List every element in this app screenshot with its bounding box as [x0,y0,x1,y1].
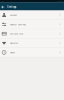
button[interactable]: General Settings [0,20,64,29]
button[interactable]: Network [0,39,64,48]
staticText: Settings [7,5,16,9]
button[interactable]: Activate Plan [0,29,64,38]
button[interactable]: About [0,48,64,57]
staticText: General Settings [10,23,26,26]
staticText: Network [10,42,18,44]
button[interactable]: Account [0,10,64,19]
button[interactable]: Back [0,6,7,8]
staticText: Account [10,14,17,16]
staticText: Activate Plan [10,32,23,35]
staticText: About [10,51,15,54]
